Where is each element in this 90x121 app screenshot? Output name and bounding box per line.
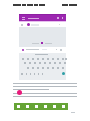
button[interactable]: Share 2: [32, 103, 41, 110]
button[interactable]: Share 4: [50, 103, 59, 110]
button[interactable]: Share 5: [59, 103, 68, 110]
button[interactable]: Share 0: [14, 103, 23, 110]
button[interactable]: Share 1: [23, 103, 32, 110]
button[interactable]: Share 3: [41, 103, 50, 110]
